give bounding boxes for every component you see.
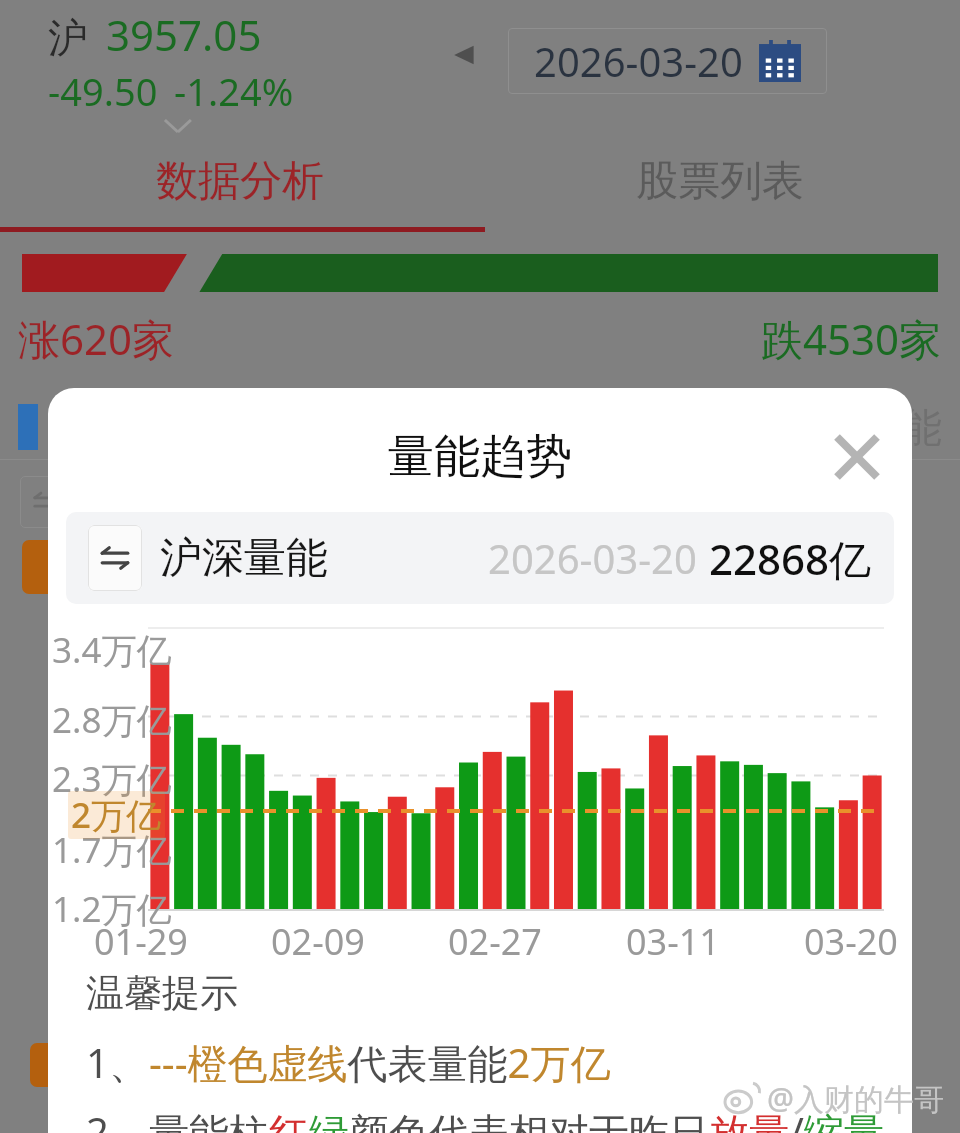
staticText: 02-09 (271, 917, 365, 959)
staticText: 涨620家 (18, 310, 175, 367)
staticText: 跌4530家 (761, 310, 942, 367)
button[interactable]: 股票列表 (480, 130, 960, 232)
staticText: 2026-03-20 (534, 34, 743, 88)
staticText: 22868亿 (709, 530, 872, 587)
staticText: 股票列表 (636, 155, 804, 208)
staticText: @入财的牛哥 (767, 1078, 944, 1119)
staticText: 03-20 (804, 917, 898, 959)
staticText: 03-11 (626, 917, 720, 959)
staticText: 2.3万亿 (52, 755, 172, 803)
button[interactable]: Close (822, 422, 892, 492)
staticText: 2026-03-20 (488, 531, 697, 585)
staticText: 能 (902, 402, 942, 452)
staticText: 1、---橙色虚线代表量能2万亿 (86, 1035, 611, 1090)
button[interactable]: 数据分析 (0, 130, 480, 232)
staticText: 量能趋势 (388, 428, 572, 486)
button[interactable]: 沪深量能 (66, 512, 894, 604)
staticText: 数据分析 (156, 155, 324, 208)
staticText: 2.8万亿 (52, 696, 172, 744)
staticText: 1.2万亿 (52, 885, 172, 933)
staticText: -1.24% (174, 65, 294, 117)
staticText: 3.4万亿 (52, 626, 172, 674)
staticText: 2、量能柱红绿颜色代表相对于昨日放量/缩量 (86, 1104, 884, 1133)
staticText: 3957.05 (106, 6, 262, 63)
staticText: 1.7万亿 (52, 826, 172, 874)
staticText: 沪深量能 (160, 532, 328, 585)
staticText: 02-27 (448, 917, 542, 959)
staticText: 01-29 (94, 917, 188, 959)
staticText: 沪 (48, 13, 88, 63)
staticText: 2万亿 (71, 791, 162, 839)
button[interactable]: Previous (430, 0, 500, 110)
button[interactable]: 2026-03-20 (508, 28, 827, 94)
staticText: -49.50 (48, 65, 158, 117)
staticText: 温馨提示 (86, 969, 238, 1017)
